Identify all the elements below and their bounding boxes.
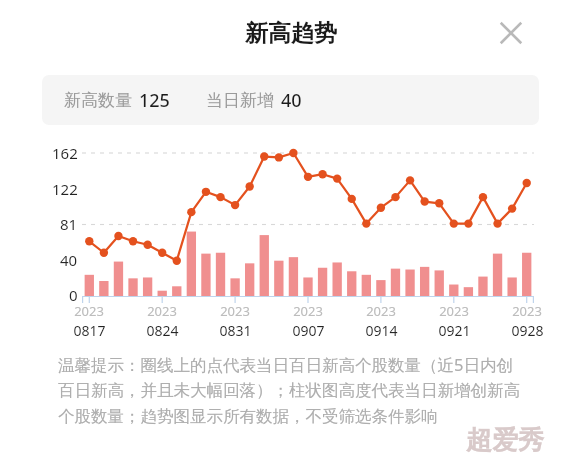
staticText: 0824 [146,321,179,340]
staticText: 2023 [512,302,542,320]
staticText: 新高数量 [64,90,132,111]
staticText: 0914 [365,321,398,340]
staticText: 122 [52,179,78,199]
staticText: 162 [52,143,78,163]
staticText: 2023 [147,302,177,320]
staticText: 超爱秀 [466,424,544,457]
staticText: 0 [69,285,78,305]
staticText: 2023 [220,302,250,320]
staticText: 40 [60,250,78,270]
staticText: 温馨提示：圈线上的点代表当日百日新高个股数量（近5日内创百日新高，并且未大幅回落… [58,353,526,427]
staticText: 当日新增 [206,90,274,111]
staticText: 2023 [366,302,396,320]
staticText: 2023 [74,302,104,320]
staticText: 125 [139,88,170,113]
staticText: 81 [60,214,78,234]
staticText: 2023 [293,302,323,320]
button[interactable]: Close [489,11,533,55]
staticText: 0928 [511,321,544,340]
staticText: 0817 [73,321,106,340]
staticText: 0831 [219,321,252,340]
staticText: 新高趋势 [245,19,337,48]
staticText: 40 [281,88,302,113]
staticText: 0921 [438,321,471,340]
staticText: 2023 [439,302,469,320]
staticText: 0907 [292,321,325,340]
button[interactable]: 新高数量 [42,75,539,125]
